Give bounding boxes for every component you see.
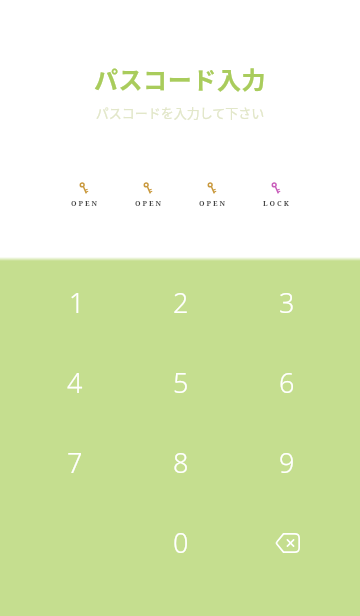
button[interactable]: 5 <box>127 342 233 422</box>
staticText: 8 <box>173 444 189 481</box>
staticText: 7 <box>67 444 83 481</box>
staticText: OPEN <box>71 199 100 209</box>
button[interactable]: 7 <box>21 422 127 502</box>
other: Backspace <box>275 533 300 553</box>
staticText: パスコード入力 <box>0 61 360 96</box>
staticText: OPEN <box>135 199 164 209</box>
staticText: 4 <box>67 364 83 401</box>
button[interactable]: 8 <box>127 422 233 502</box>
button[interactable]: 6 <box>233 342 339 422</box>
staticText: 5 <box>173 364 189 401</box>
staticText: OPEN <box>199 199 228 209</box>
button[interactable]: Backspace <box>233 502 339 582</box>
staticText: パスコードを入力して下さい <box>0 103 360 122</box>
staticText: 6 <box>279 364 295 401</box>
staticText: 9 <box>279 444 295 481</box>
button[interactable]: 9 <box>233 422 339 502</box>
staticText: 1 <box>69 284 85 321</box>
staticText: LOCK <box>263 199 291 209</box>
button[interactable]: 1 <box>21 262 127 342</box>
staticText: 2 <box>173 284 189 321</box>
button[interactable]: 2 <box>127 262 233 342</box>
staticText: 3 <box>279 284 295 321</box>
button[interactable]: 3 <box>233 262 339 342</box>
button[interactable]: 4 <box>21 342 127 422</box>
button[interactable]: 0 <box>127 502 233 582</box>
staticText: 0 <box>173 524 189 561</box>
